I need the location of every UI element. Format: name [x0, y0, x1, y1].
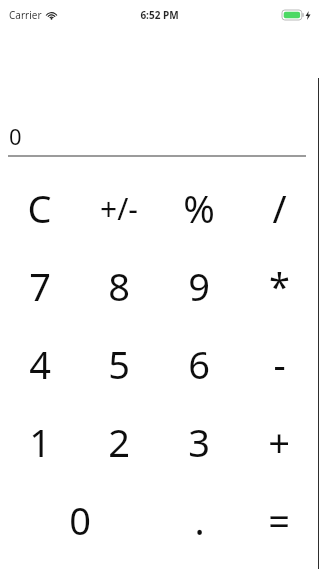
- staticText: /: [272, 182, 287, 234]
- staticText: 0: [9, 121, 22, 151]
- staticText: 6:52 PM: [140, 8, 179, 22]
- button[interactable]: 3: [159, 403, 239, 481]
- staticText: .: [194, 494, 205, 546]
- button[interactable]: C: [0, 169, 79, 247]
- staticText: 5: [108, 338, 130, 390]
- staticText: 2: [108, 416, 130, 468]
- button[interactable]: 4: [0, 325, 79, 403]
- button[interactable]: 1: [0, 403, 79, 481]
- button[interactable]: +: [239, 403, 319, 481]
- button[interactable]: %: [159, 169, 239, 247]
- button[interactable]: +/-: [79, 169, 159, 247]
- staticText: 1: [29, 416, 51, 468]
- staticText: Carrier: [9, 8, 42, 22]
- button[interactable]: 6: [159, 325, 239, 403]
- staticText: C: [27, 182, 52, 234]
- staticText: -: [273, 338, 286, 390]
- button[interactable]: =: [239, 481, 319, 559]
- staticText: 0: [69, 494, 91, 546]
- button[interactable]: -: [239, 325, 319, 403]
- staticText: =: [268, 494, 290, 546]
- staticText: 3: [188, 416, 210, 468]
- button[interactable]: *: [239, 247, 319, 325]
- button[interactable]: 0: [0, 481, 159, 559]
- staticText: +/-: [100, 188, 138, 229]
- staticText: %: [183, 182, 215, 234]
- staticText: 7: [29, 260, 51, 312]
- staticText: 9: [188, 260, 210, 312]
- button[interactable]: 2: [79, 403, 159, 481]
- staticText: +: [268, 416, 290, 468]
- button[interactable]: 7: [0, 247, 79, 325]
- staticText: 8: [108, 260, 130, 312]
- staticText: 6: [188, 338, 210, 390]
- button[interactable]: 9: [159, 247, 239, 325]
- staticText: 4: [29, 338, 51, 390]
- button[interactable]: 8: [79, 247, 159, 325]
- button[interactable]: /: [239, 169, 319, 247]
- button[interactable]: 5: [79, 325, 159, 403]
- staticText: *: [269, 260, 290, 312]
- button[interactable]: .: [159, 481, 239, 559]
